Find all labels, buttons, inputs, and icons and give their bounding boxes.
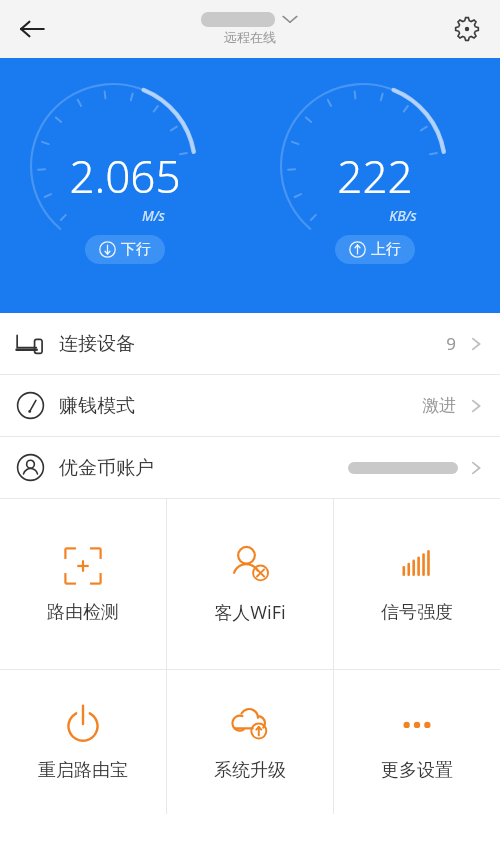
staticText: 2.065 (69, 146, 181, 206)
button[interactable]: 客人WiFi (167, 499, 333, 669)
staticText: 上行 (371, 240, 401, 259)
button[interactable]: 更多设置 (334, 670, 500, 814)
button[interactable]: 连接设备 (0, 313, 500, 374)
button[interactable]: Settings (444, 6, 490, 52)
button[interactable]: 下行 (85, 235, 165, 264)
staticText: 赚钱模式 (59, 394, 135, 418)
button[interactable]: 优金币账户 (0, 437, 500, 498)
button[interactable]: 重启路由宝 (0, 670, 166, 814)
staticText: 系统升级 (214, 759, 286, 782)
button[interactable]: 远程在线 (195, 10, 305, 45)
staticText: 222 (337, 146, 413, 206)
staticText: 重启路由宝 (38, 759, 128, 782)
button[interactable]: 上行 (335, 235, 415, 264)
button[interactable]: 赚钱模式 (0, 375, 500, 436)
staticText: 路由检测 (47, 601, 119, 624)
staticText: M/s (142, 206, 165, 225)
button[interactable]: 路由检测 (0, 499, 166, 669)
button[interactable]: 信号强度 (334, 499, 500, 669)
staticText: KB/s (389, 206, 417, 225)
staticText: 客人WiFi (214, 600, 286, 625)
staticText: 远程在线 (224, 29, 276, 45)
staticText: 更多设置 (381, 759, 453, 782)
button[interactable]: 系统升级 (167, 670, 333, 814)
staticText: 信号强度 (381, 601, 453, 624)
staticText: 优金币账户 (59, 456, 154, 480)
staticText: 下行 (121, 240, 151, 259)
button[interactable]: Back (8, 5, 56, 53)
staticText: 激进 (422, 395, 456, 416)
staticText: 9 (446, 332, 456, 355)
staticText: 连接设备 (59, 332, 135, 356)
